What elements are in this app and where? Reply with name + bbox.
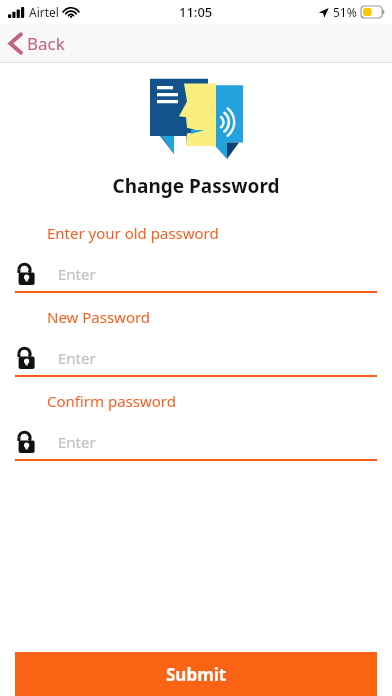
staticText: Enter xyxy=(58,432,96,452)
staticText: New Password xyxy=(47,307,151,327)
other: Password xyxy=(15,429,35,455)
other: Password xyxy=(15,261,35,287)
staticText: 11:05 xyxy=(179,3,213,21)
staticText: Change Password xyxy=(0,173,392,199)
other: Password xyxy=(15,345,35,371)
staticText: Enter your old password xyxy=(47,223,219,243)
button[interactable]: Password xyxy=(15,341,377,375)
staticText: Back xyxy=(27,32,65,55)
button[interactable]: Password xyxy=(15,257,377,291)
staticText: Airtel xyxy=(29,4,59,20)
staticText: Confirm password xyxy=(47,391,176,411)
staticText: Enter xyxy=(58,348,96,368)
staticText: Submit xyxy=(166,663,227,686)
button[interactable]: Back xyxy=(9,32,65,55)
button[interactable]: Password xyxy=(15,425,377,459)
button[interactable]: Submit xyxy=(15,652,377,696)
staticText: Enter xyxy=(58,264,96,284)
staticText: 51% xyxy=(333,4,357,20)
